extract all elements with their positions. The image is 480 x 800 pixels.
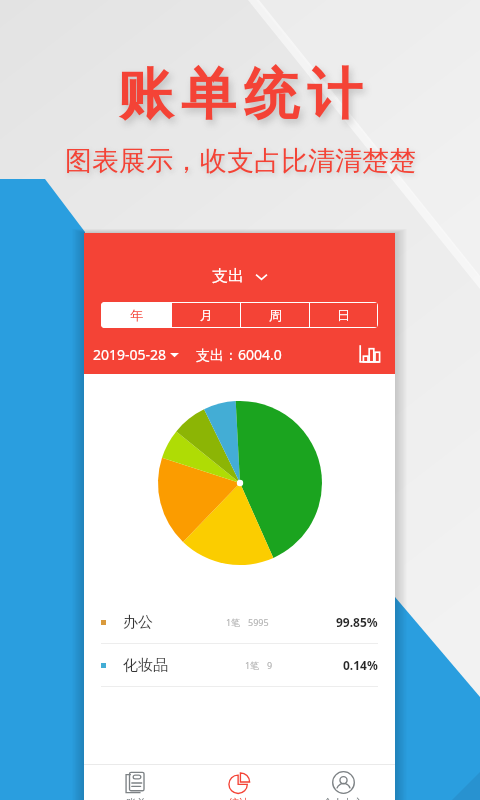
staticText: 统计 <box>229 796 249 800</box>
staticText: 支出 <box>212 266 244 286</box>
staticText: 0.14% <box>343 657 378 673</box>
button[interactable]: 账单 <box>84 765 187 800</box>
staticText: 2019-05-28 <box>93 345 167 364</box>
staticText: 年 <box>130 307 143 323</box>
staticText: 5995 <box>248 616 269 628</box>
button[interactable]: 支出 <box>212 266 268 286</box>
staticText: 化妆品 <box>123 656 168 675</box>
staticText: 1笔 <box>245 659 260 671</box>
button[interactable]: 周 <box>241 303 309 327</box>
button[interactable]: 月 <box>172 303 240 327</box>
staticText: 账单统计 <box>114 60 366 129</box>
button[interactable]: 个人中心 <box>291 765 395 800</box>
staticText: 99.85% <box>336 614 378 630</box>
staticText: 图表展示，收支占比清清楚楚 <box>65 144 416 178</box>
button[interactable]: 化妆品 <box>84 644 395 686</box>
button[interactable]: 年 <box>101 302 171 328</box>
staticText: 9 <box>267 659 273 671</box>
button[interactable]: 办公 <box>84 601 395 643</box>
staticText: 月 <box>200 307 213 323</box>
staticText: 个人中心 <box>323 796 363 800</box>
staticText: 办公 <box>123 613 153 632</box>
button[interactable]: 2019-05-28 <box>93 345 179 364</box>
staticText: 账单 <box>126 796 146 800</box>
button[interactable]: 日 <box>310 303 377 327</box>
staticText: 1笔 <box>226 616 241 628</box>
staticText: 周 <box>269 307 282 323</box>
button[interactable]: Bar chart <box>358 343 380 365</box>
button[interactable]: 统计 <box>187 765 291 800</box>
staticText: 日 <box>337 307 350 323</box>
staticText: 支出：6004.0 <box>196 345 282 364</box>
